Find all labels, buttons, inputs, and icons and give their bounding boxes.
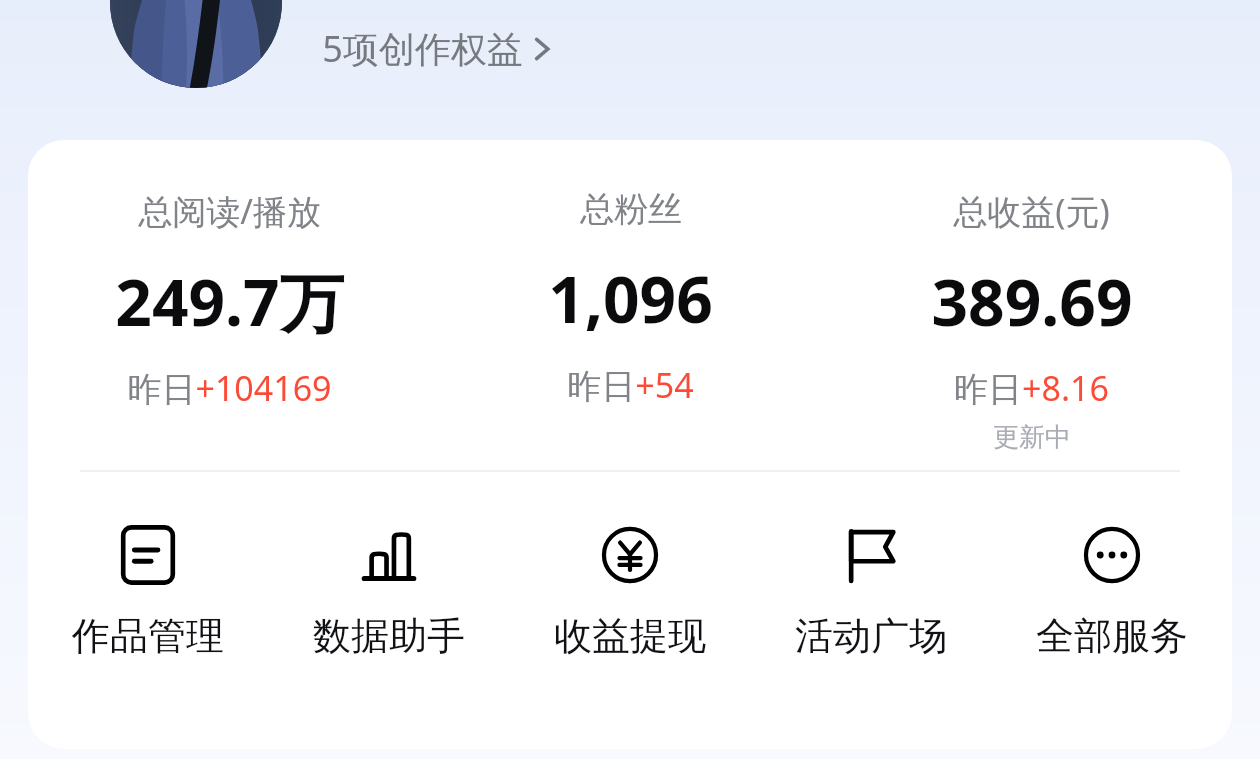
staticText: 作品管理 bbox=[72, 612, 224, 660]
staticText: 5项创作权益 bbox=[322, 24, 523, 73]
staticText: 全部服务 bbox=[1036, 612, 1188, 660]
button[interactable]: 总收益(元) bbox=[831, 140, 1232, 470]
staticText: 收益提现 bbox=[554, 612, 706, 660]
button[interactable]: 5项创作权益 bbox=[316, 20, 559, 77]
staticText: 数据助手 bbox=[313, 612, 465, 660]
staticText: 更新中 bbox=[993, 421, 1071, 454]
button[interactable]: 收益提现 bbox=[509, 520, 750, 664]
staticText: 昨日+8.16 bbox=[954, 365, 1109, 411]
button[interactable]: 全部服务 bbox=[991, 520, 1232, 664]
button[interactable]: 总阅读/播放 bbox=[28, 140, 430, 470]
staticText: 活动广场 bbox=[795, 612, 947, 660]
staticText: 总收益(元) bbox=[953, 188, 1110, 234]
staticText: 249.7万 bbox=[115, 258, 344, 345]
staticText: 昨日+54 bbox=[567, 362, 694, 408]
button[interactable]: Profile avatar bbox=[110, 0, 282, 88]
staticText: 389.69 bbox=[931, 258, 1133, 345]
staticText: 昨日+104169 bbox=[127, 365, 332, 411]
staticText: 总粉丝 bbox=[580, 188, 682, 231]
button[interactable]: 活动广场 bbox=[750, 520, 991, 664]
button[interactable]: 总粉丝 bbox=[430, 140, 831, 470]
button[interactable]: 作品管理 bbox=[28, 520, 268, 664]
staticText: 总阅读/播放 bbox=[138, 188, 321, 234]
button[interactable]: 数据助手 bbox=[268, 520, 509, 664]
staticText: 1,096 bbox=[548, 255, 713, 342]
